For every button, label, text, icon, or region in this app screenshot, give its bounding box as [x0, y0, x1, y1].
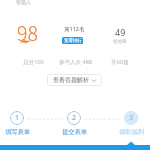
- staticText: 总分100: [23, 58, 44, 66]
- button[interactable]: 3: [109, 111, 150, 136]
- staticText: 提交表单: [62, 128, 87, 136]
- staticText: 查看答题解析: [53, 76, 89, 84]
- staticText: 第112名: [64, 25, 85, 33]
- staticText: 答题人: [16, 0, 31, 5]
- staticText: 2: [72, 113, 77, 123]
- staticText: 3: [129, 113, 134, 123]
- staticText: 查看排行: [64, 38, 82, 44]
- button[interactable]: 查看排行: [62, 37, 83, 44]
- staticText: 答对题: [113, 39, 127, 45]
- button[interactable]: 查看答题解析: [47, 74, 102, 86]
- staticText: 49: [115, 26, 126, 38]
- button[interactable]: 2: [52, 111, 96, 136]
- staticText: 共60题: [111, 58, 129, 66]
- staticText: 1: [15, 113, 20, 123]
- staticText: 填写表单: [5, 128, 30, 136]
- staticText: 参与人次 488: [59, 58, 92, 66]
- button[interactable]: 1: [0, 111, 39, 136]
- staticText: 98: [17, 18, 38, 46]
- staticText: 领取福利: [119, 128, 144, 136]
